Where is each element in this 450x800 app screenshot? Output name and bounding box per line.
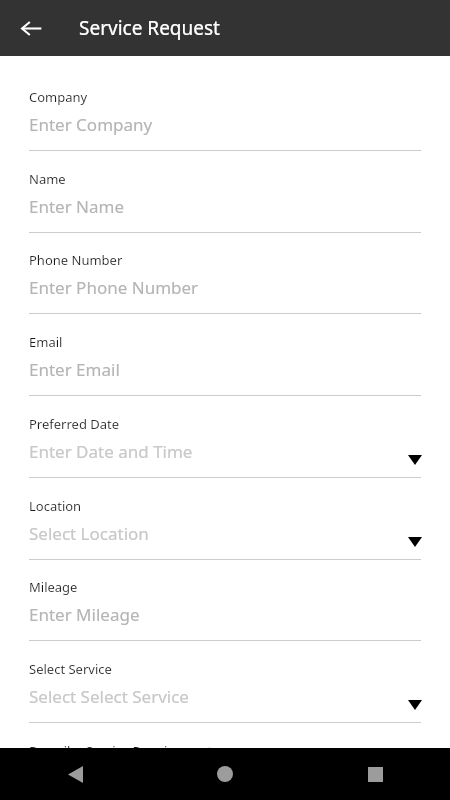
other: Open Preferred Date options [408,455,422,465]
staticText: Enter Phone Number [29,276,199,299]
button[interactable]: Home [150,748,300,800]
staticText: Describe Service Requirements [29,742,219,760]
staticText: Company [29,88,88,106]
button[interactable]: Select Service [0,655,450,737]
staticText: Service Request [79,15,220,41]
other: Open Select Service options [408,700,422,710]
button[interactable]: Recent apps [300,748,450,800]
staticText: Phone Number [29,251,123,269]
staticText: Select Location [29,522,149,545]
staticText: Mileage [29,578,78,596]
staticText: Name [29,170,66,188]
button[interactable]: Back [0,748,150,800]
staticText: Enter Mileage [29,603,140,626]
button[interactable]: Navigate up [11,8,51,48]
staticText: Enter Email [29,358,120,381]
staticText: Enter Date and Time [29,440,193,463]
button[interactable]: Email [0,328,450,410]
staticText: Enter Name [29,195,125,218]
button[interactable]: Company [0,83,450,165]
staticText: Email [29,333,63,351]
button[interactable]: Phone Number [0,246,450,328]
button[interactable]: Name [0,165,450,247]
staticText: Select Service [29,660,112,678]
button[interactable]: Describe Service Requirements [0,737,450,800]
staticText: Location [29,497,82,515]
button[interactable]: Mileage [0,573,450,655]
staticText: Select Select Service [29,685,189,708]
other: Open Location options [408,537,422,547]
button[interactable]: Location [0,492,450,574]
staticText: Enter Company [29,113,153,136]
staticText: Preferred Date [29,415,120,433]
button[interactable]: Preferred Date [0,410,450,492]
